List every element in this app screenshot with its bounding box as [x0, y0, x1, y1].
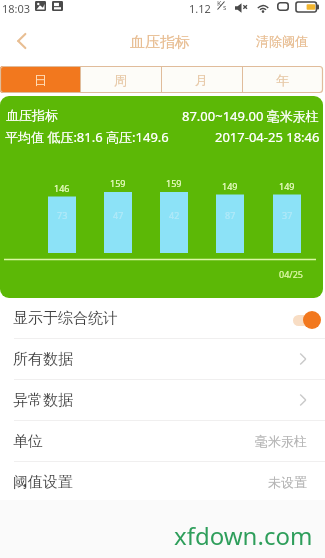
button[interactable]: 异常数据 [0, 380, 325, 420]
staticText: 42 [169, 209, 180, 221]
staticText: 平均值 低压:81.6 高压:149.6 [5, 128, 169, 146]
staticText: 清除阈值 [256, 33, 308, 49]
staticText: 异常数据 [13, 391, 73, 410]
staticText: 日 [34, 72, 47, 88]
button[interactable]: Back [0, 23, 42, 65]
staticText: 87.00~149.00 毫米汞柱 [182, 107, 319, 125]
staticText: 2017-04-25 18:46 [215, 128, 320, 146]
staticText: 87 [225, 209, 236, 221]
button[interactable]: 周 [80, 66, 161, 93]
staticText: s [223, 3, 227, 13]
staticText: 周 [114, 72, 127, 88]
staticText: 1.12 [189, 1, 211, 16]
staticText: 146 [54, 182, 70, 194]
staticText: 毫米汞柱 [255, 433, 307, 449]
staticText: 显示于综合统计 [13, 309, 118, 328]
staticText: 73 [57, 209, 68, 221]
staticText: 血压指标 [130, 33, 190, 52]
staticText: 149 [222, 180, 238, 192]
button[interactable]: 所有数据 [0, 339, 325, 379]
staticText: 04/25 [279, 268, 303, 280]
button[interactable]: 阈值设置 [0, 462, 325, 502]
staticText: 159 [110, 177, 126, 189]
staticText: 37 [282, 209, 293, 221]
button[interactable]: 年 [242, 66, 323, 93]
button[interactable]: 清除阈值 [248, 22, 325, 66]
button[interactable]: 单位 [0, 421, 325, 461]
staticText: 年 [276, 72, 289, 88]
staticText: 阈值设置 [13, 473, 73, 492]
button[interactable]: 日 [0, 66, 80, 93]
staticText: 月 [195, 72, 208, 88]
staticText: 18:03 [2, 1, 31, 16]
staticText: 未设置 [268, 474, 307, 490]
staticText: 159 [166, 177, 182, 189]
button[interactable]: 月 [161, 66, 242, 93]
staticText: 所有数据 [13, 350, 73, 369]
staticText: xfdown.com [174, 519, 313, 552]
staticText: 47 [113, 209, 124, 221]
staticText: 149 [279, 180, 295, 192]
staticText: 血压指标 [6, 107, 58, 123]
button[interactable]: 显示于综合统计 [0, 298, 325, 338]
staticText: 单位 [13, 432, 43, 451]
staticText: K [217, 0, 222, 9]
